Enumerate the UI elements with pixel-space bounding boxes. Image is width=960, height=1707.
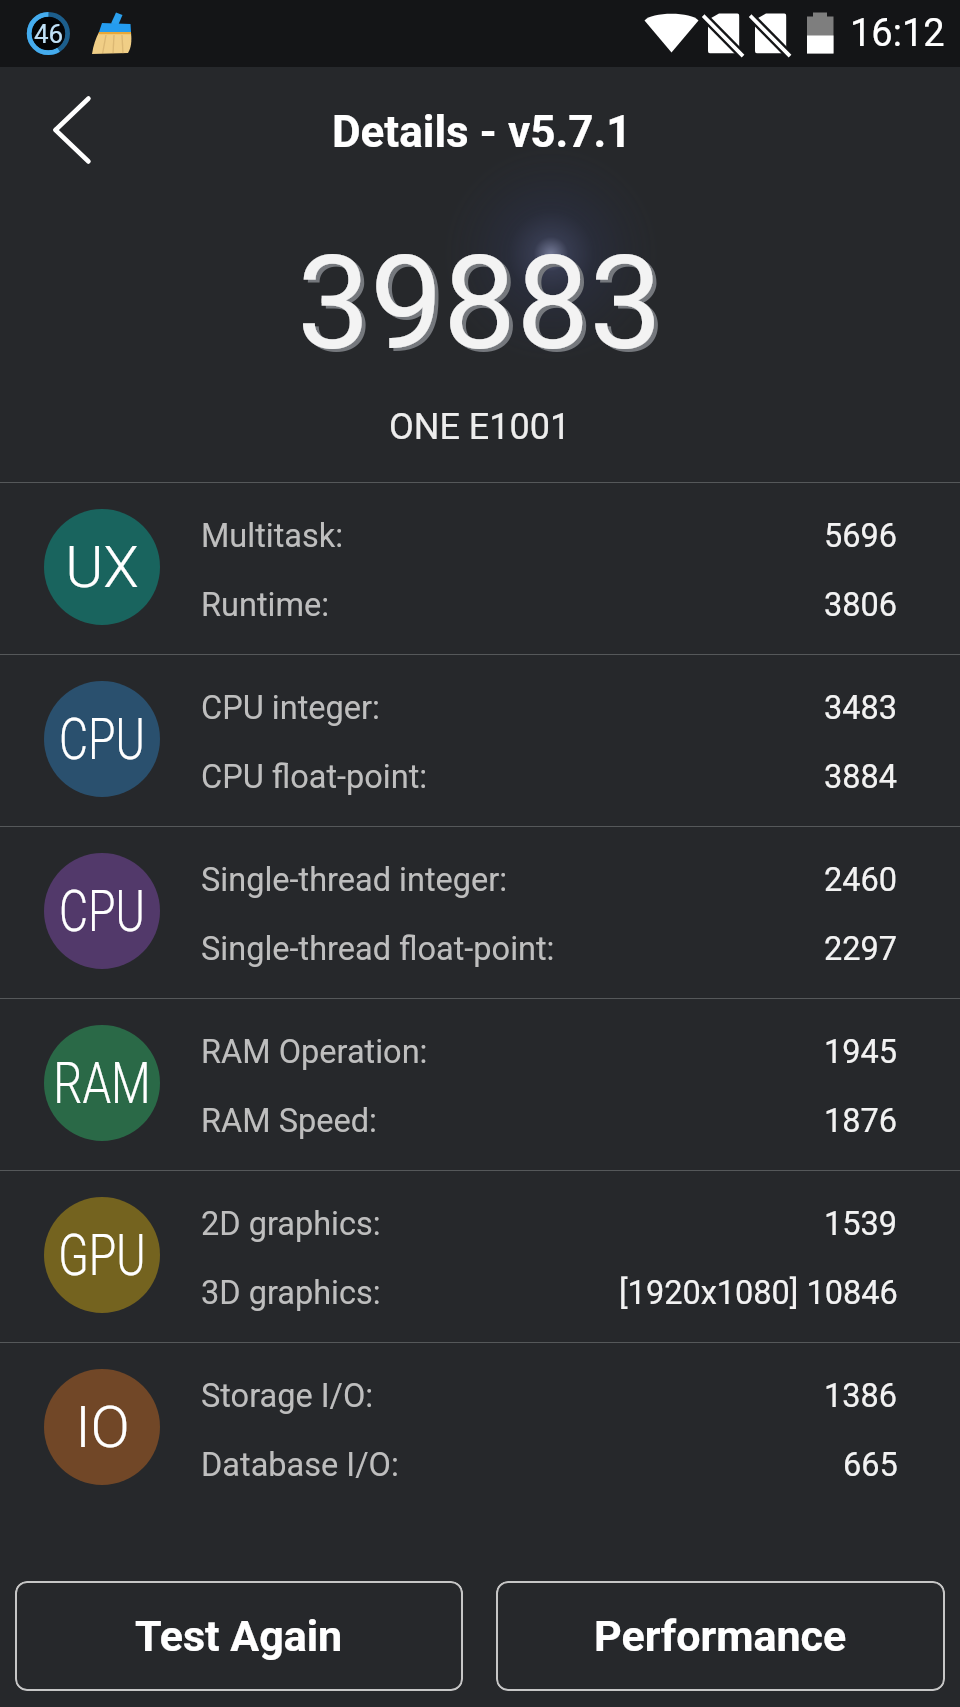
staticText: ONE E1001 [389,406,571,448]
staticText: RAM Speed: [201,1102,377,1140]
staticText: 2460 [824,861,898,899]
button[interactable]: UX [0,482,960,654]
staticText: 2D graphics: [201,1205,381,1243]
staticText: 39883 [297,227,663,379]
staticText: 3884 [824,758,898,796]
staticText: Storage I/O: [201,1377,374,1415]
staticText: IO [75,1393,130,1461]
button[interactable]: Back [0,67,110,180]
staticText: CPU [59,705,145,773]
staticText: 3D graphics: [201,1274,381,1312]
staticText: RAM [53,1049,151,1117]
staticText: Multitask: [201,517,344,555]
button[interactable]: IO [0,1342,960,1514]
staticText: 2297 [824,930,898,968]
staticText: UX [65,533,139,601]
staticText: Runtime: [201,586,330,624]
staticText: Database I/O: [201,1446,399,1484]
button[interactable]: Performance [496,1581,945,1691]
staticText: RAM Operation: [201,1033,428,1071]
staticText: 3806 [824,586,898,624]
staticText: Single-thread float-point: [201,930,555,968]
button[interactable]: CPU [0,826,960,998]
staticText: Test Again [135,1611,343,1661]
staticText: 1876 [824,1102,898,1140]
staticText: CPU [59,877,145,945]
button[interactable]: GPU [0,1170,960,1342]
button[interactable]: RAM [0,998,960,1170]
staticText: 1386 [824,1377,898,1415]
staticText: 1945 [824,1033,898,1071]
staticText: 16:12 [850,11,945,56]
staticText: Performance [594,1611,847,1661]
button[interactable]: Test Again [15,1581,463,1691]
staticText: 665 [843,1446,898,1484]
staticText: CPU float-point: [201,758,428,796]
staticText: Details - v5.7.1 [332,106,632,158]
staticText: Single-thread integer: [201,861,508,899]
staticText: 1539 [824,1205,898,1243]
staticText: 5696 [824,517,898,555]
staticText: 46 [33,19,64,49]
staticText: 39883 [301,230,667,382]
staticText: [1920x1080] 10846 [619,1274,898,1312]
button[interactable]: CPU [0,654,960,826]
staticText: CPU integer: [201,689,380,727]
staticText: GPU [58,1221,146,1289]
staticText: 3483 [824,689,898,727]
